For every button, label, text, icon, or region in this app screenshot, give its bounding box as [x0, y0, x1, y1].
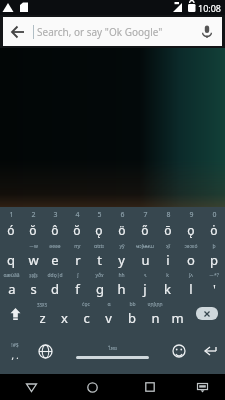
- staticText: a: [8, 280, 16, 298]
- button[interactable]: ɑtɪtɪ: [88, 241, 110, 270]
- staticText: n: [151, 309, 160, 327]
- button[interactable]: əeəə: [44, 241, 66, 270]
- staticText: 5: [97, 210, 102, 220]
- button[interactable]: ɱɾ: [66, 241, 88, 270]
- staticText: m: [171, 309, 184, 327]
- button[interactable]: ʂʂʃʂ: [22, 270, 44, 299]
- button[interactable]: x: [53, 299, 75, 328]
- button[interactable]: 0: [202, 207, 225, 241]
- staticText: 0: [212, 210, 217, 220]
- button[interactable]: Voice search: [192, 17, 222, 46]
- staticText: yỹ: [119, 243, 125, 250]
- button[interactable]: m: [166, 299, 189, 328]
- staticText: , .: [11, 349, 19, 361]
- staticText: ô: [51, 222, 59, 238]
- staticText: 7: [143, 210, 148, 220]
- staticText: yðɤ: [95, 272, 104, 279]
- button[interactable]: Backspace: [189, 299, 225, 328]
- button[interactable]: ćǫc: [75, 299, 97, 328]
- staticText: ɑæùãã: [3, 272, 20, 279]
- button[interactable]: 7: [133, 207, 156, 241]
- button[interactable]: 6: [110, 207, 133, 241]
- button[interactable]: ʉɔʃʉʉɯ: [133, 241, 156, 270]
- button[interactable]: ⁓*?: [202, 270, 225, 299]
- staticText: u: [141, 251, 150, 269]
- staticText: d: [51, 280, 59, 298]
- staticText: ɑtɪtɪ: [94, 243, 104, 250]
- staticText: 6: [120, 210, 125, 220]
- button[interactable]: Enter: [194, 328, 225, 374]
- button[interactable]: Back: [0, 374, 63, 400]
- staticText: g: [96, 280, 104, 298]
- staticText: p: [210, 251, 218, 269]
- staticText: ʃ: [77, 272, 79, 279]
- staticText: v: [105, 309, 112, 327]
- staticText: b: [128, 309, 136, 327]
- button[interactable]: 8: [156, 207, 179, 241]
- staticText: r: [75, 251, 81, 269]
- button[interactable]: 2: [22, 207, 44, 241]
- button[interactable]: Home: [63, 374, 121, 400]
- staticText: ō: [164, 222, 172, 238]
- button[interactable]: Recents: [121, 374, 179, 400]
- button[interactable]: ddǫ|d: [44, 270, 66, 299]
- staticText: f: [75, 280, 80, 298]
- button[interactable]: 5: [88, 207, 110, 241]
- button[interactable]: ʞĩ: [156, 241, 179, 270]
- staticText: ö: [118, 222, 126, 238]
- button[interactable]: ʋɲʃɩɲɲ: [143, 299, 166, 328]
- button[interactable]: Back: [3, 17, 222, 46]
- staticText: ŏ: [29, 222, 37, 238]
- staticText: j: [143, 280, 147, 298]
- staticText: ddǫ|d: [47, 272, 63, 279]
- button[interactable]: ʃ: [66, 270, 88, 299]
- staticText: 4: [75, 210, 80, 220]
- button[interactable]: Hide keyboard: [179, 374, 225, 400]
- staticText: z: [39, 309, 46, 327]
- button[interactable]: k: [156, 270, 179, 299]
- staticText: 1: [9, 210, 14, 220]
- button[interactable]: q: [0, 241, 22, 270]
- button[interactable]: ʃʌ: [179, 270, 202, 299]
- button[interactable]: yỹ: [110, 241, 133, 270]
- staticText: h: [117, 280, 126, 298]
- staticText: ʂʂʃʂ: [29, 272, 38, 279]
- button[interactable]: 9: [179, 207, 202, 241]
- button[interactable]: Back: [3, 17, 33, 46]
- button[interactable]: Change language: [30, 328, 61, 374]
- button[interactable]: Emoji: [163, 328, 194, 374]
- staticText: s: [30, 280, 37, 298]
- staticText: !#$: [11, 342, 19, 349]
- staticText: 2: [31, 210, 36, 220]
- staticText: ʋɲʃɩɲɲ: [147, 301, 163, 308]
- button[interactable]: ɑ: [97, 299, 120, 328]
- staticText: 10:08: [198, 2, 222, 14]
- button[interactable]: Space: [61, 328, 163, 374]
- button[interactable]: ɦɦ: [110, 270, 133, 299]
- button[interactable]: yðɤ: [88, 270, 110, 299]
- staticText: 9: [189, 210, 194, 220]
- button[interactable]: ʲɩ: [133, 270, 156, 299]
- staticText: ó: [7, 222, 15, 238]
- staticText: l: [189, 280, 193, 298]
- staticText: ไทย: [108, 344, 117, 352]
- button[interactable]: Shift: [0, 299, 31, 328]
- staticText: ǫ: [187, 222, 195, 238]
- staticText: əeəə: [49, 243, 61, 250]
- button[interactable]: bb: [120, 299, 143, 328]
- button[interactable]: ʒʒʂʒ: [31, 299, 53, 328]
- button[interactable]: ɑæùãã: [0, 270, 22, 299]
- button[interactable]: ɔəɔɛó: [179, 241, 202, 270]
- staticText: Search, or say "Ok Google": [37, 25, 192, 39]
- button[interactable]: 1: [0, 207, 22, 241]
- staticText: bb: [129, 301, 136, 308]
- staticText: ɱɾ: [74, 243, 81, 250]
- button[interactable]: 4: [66, 207, 88, 241]
- staticText: c: [83, 309, 90, 327]
- button[interactable]: 3: [44, 207, 66, 241]
- button[interactable]: ⁓w: [22, 241, 44, 270]
- staticText: ŏ: [73, 222, 81, 238]
- staticText: ɑ: [107, 301, 111, 308]
- button[interactable]: !#$: [0, 328, 30, 374]
- button[interactable]: þ: [202, 241, 225, 270]
